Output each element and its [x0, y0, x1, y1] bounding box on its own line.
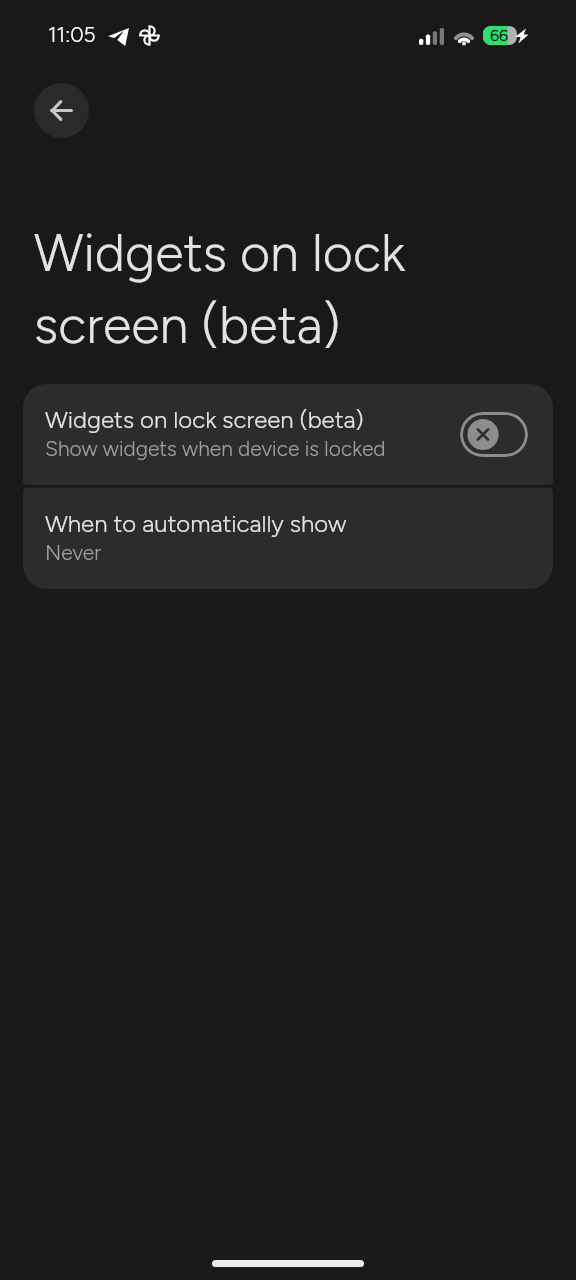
staticText: Widgets on lock screen (beta) [45, 406, 364, 434]
staticText: Never [45, 539, 102, 565]
staticText: Show widgets when device is locked [45, 435, 386, 461]
button[interactable]: Back [34, 83, 89, 138]
button[interactable]: When to automatically show [23, 488, 553, 589]
button[interactable]: Widgets on lock screen toggle, off [460, 412, 528, 457]
button[interactable]: Widgets on lock screen (beta) [23, 384, 553, 485]
staticText: Widgets on lock screen (beta) [34, 214, 406, 358]
staticText: When to automatically show [45, 510, 347, 538]
staticText: 11:05 [48, 21, 96, 47]
staticText: 66 [490, 26, 508, 45]
